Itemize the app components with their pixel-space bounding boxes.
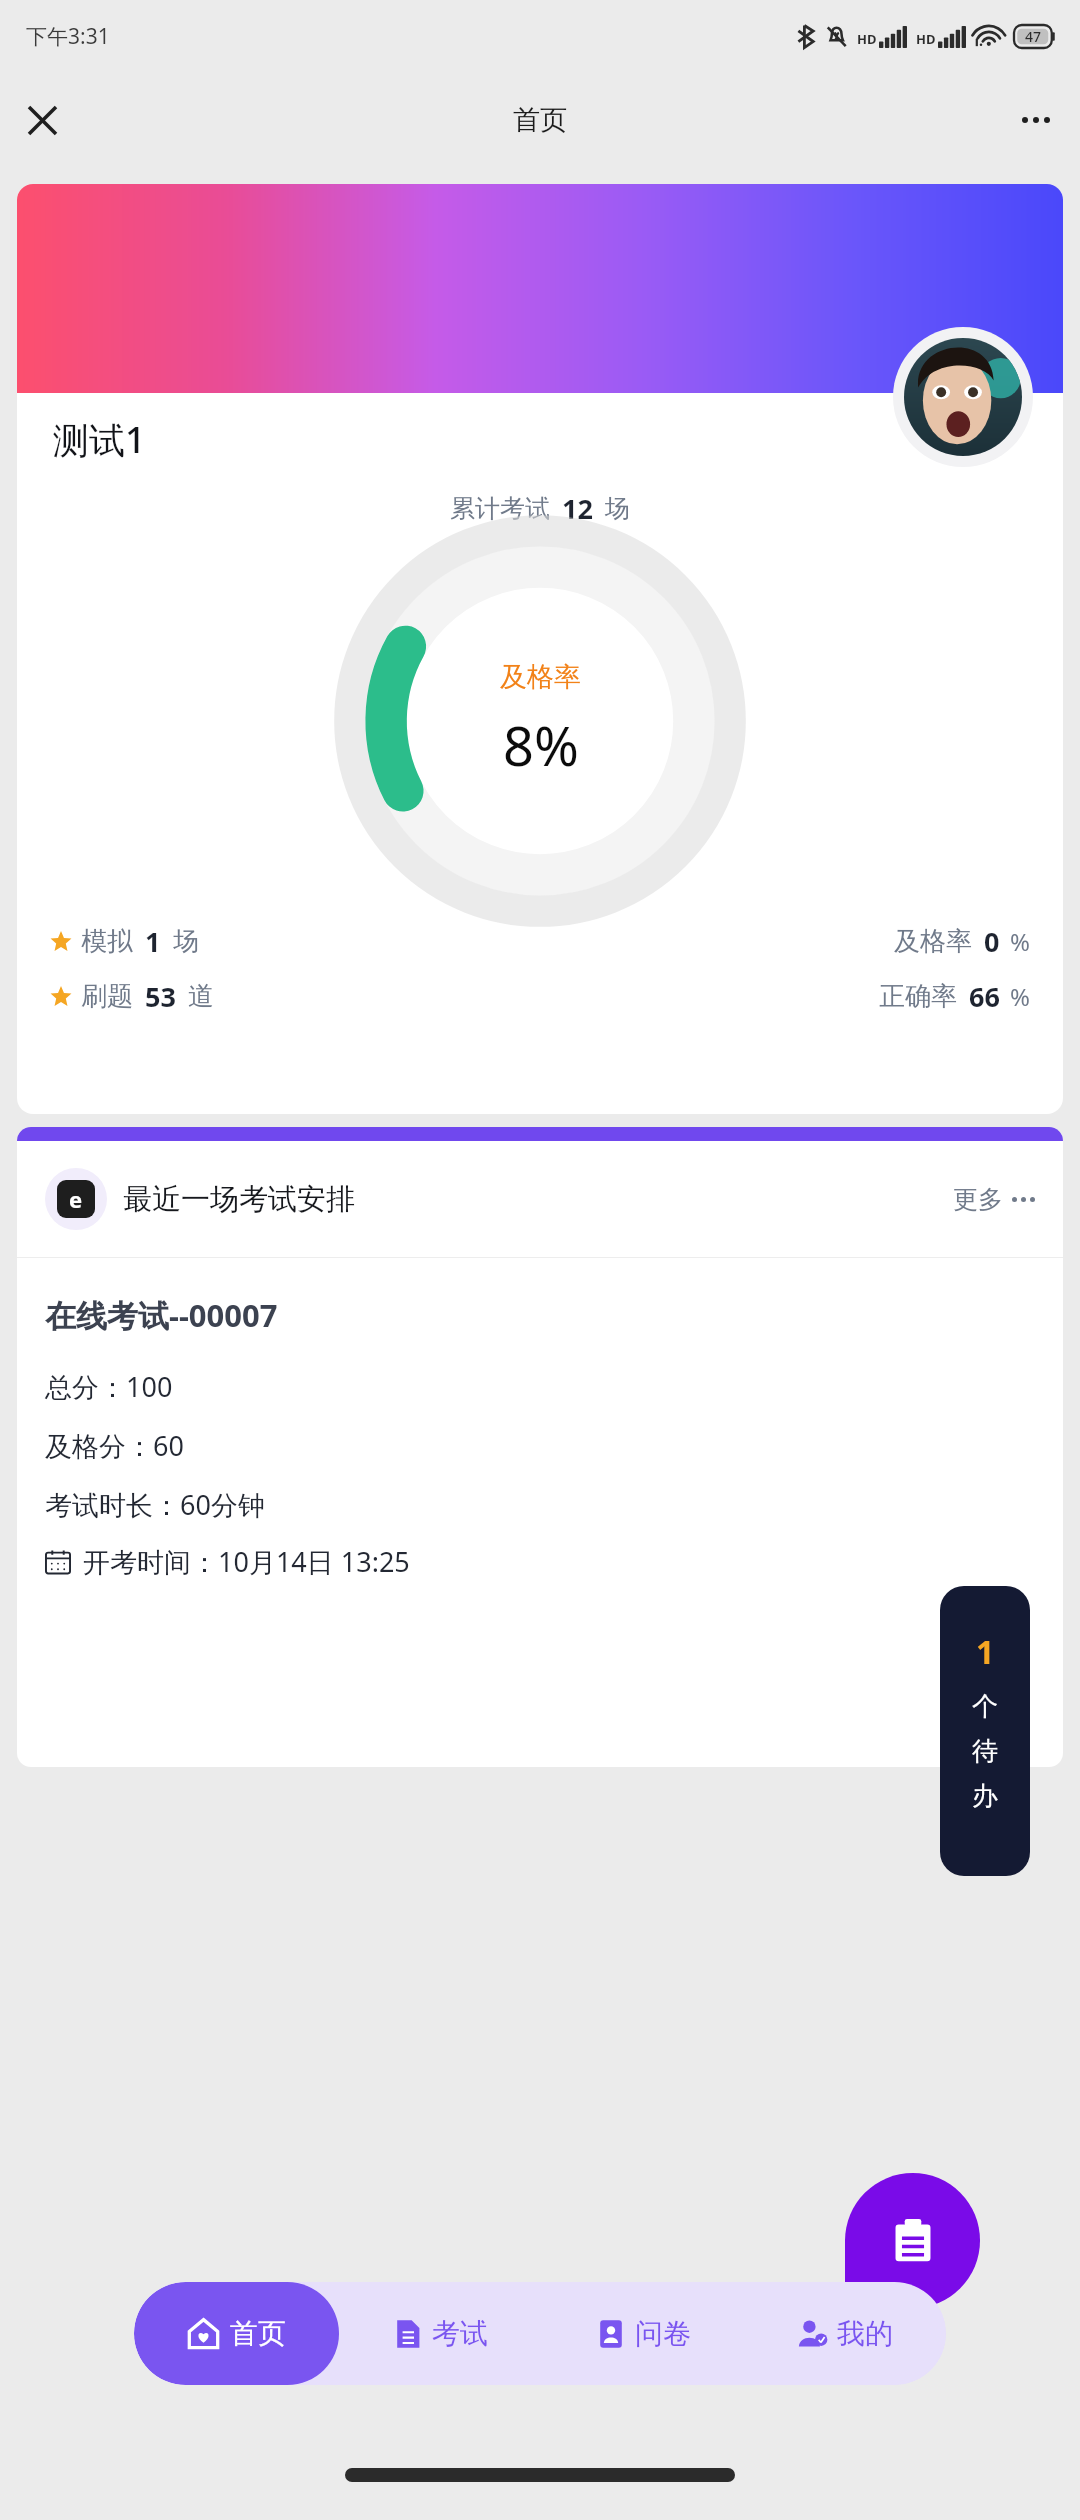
staticText: 累计考试: [450, 493, 550, 524]
staticText: 测试1: [53, 415, 146, 464]
staticText: %: [1010, 980, 1030, 1013]
staticText: 考试: [432, 2316, 488, 2351]
staticText: 我的: [837, 2316, 893, 2351]
staticText: 8%: [503, 708, 579, 782]
button[interactable]: 测试1: [17, 184, 1063, 1114]
staticText: 首页: [230, 2316, 286, 2351]
staticText: 场: [605, 493, 630, 524]
staticText: HD: [857, 30, 877, 48]
staticText: 1: [976, 1630, 995, 1674]
staticText: 及格率: [500, 660, 581, 694]
staticText: 1: [145, 923, 161, 960]
button[interactable]: 考试: [339, 2282, 542, 2385]
button[interactable]: More options: [1006, 90, 1066, 150]
staticText: 刷题: [81, 980, 133, 1013]
staticText: 待: [972, 1735, 998, 1768]
button[interactable]: Close: [12, 90, 72, 150]
staticText: 最近一场考试安排: [123, 1181, 355, 1218]
button[interactable]: 首页: [134, 2282, 339, 2385]
staticText: 场: [173, 925, 199, 958]
staticText: 考试时长：60分钟: [45, 1486, 265, 1523]
staticText: 问卷: [635, 2316, 691, 2351]
staticText: 12: [562, 490, 593, 527]
staticText: 开考时间：10月14日 13:25: [83, 1543, 410, 1580]
staticText: 53: [145, 978, 176, 1015]
staticText: 下午3:31: [26, 22, 110, 51]
staticText: 办: [972, 1780, 998, 1813]
staticText: 更多: [953, 1184, 1003, 1215]
staticText: 47: [1025, 27, 1042, 46]
staticText: 首页: [513, 103, 567, 137]
staticText: 模拟: [81, 925, 133, 958]
staticText: 总分：100: [45, 1368, 173, 1405]
staticText: 0: [984, 923, 1000, 960]
staticText: 在线考试--00007: [45, 1294, 278, 1336]
staticText: 及格率: [894, 925, 972, 958]
staticText: e: [69, 1184, 83, 1214]
staticText: HD: [916, 30, 936, 48]
button[interactable]: 我的: [744, 2282, 946, 2385]
staticText: 正确率: [879, 980, 957, 1013]
staticText: 个: [972, 1690, 998, 1723]
staticText: %: [1010, 925, 1030, 958]
staticText: 66: [969, 978, 1000, 1015]
button[interactable]: 更多: [953, 1184, 1035, 1215]
button[interactable]: e: [17, 1141, 1063, 1257]
staticText: 及格分：60: [45, 1427, 184, 1464]
button[interactable]: 问卷: [542, 2282, 744, 2385]
button[interactable]: New exam: [845, 2173, 980, 2308]
staticText: 道: [188, 980, 214, 1013]
button[interactable]: 1: [940, 1586, 1030, 1876]
